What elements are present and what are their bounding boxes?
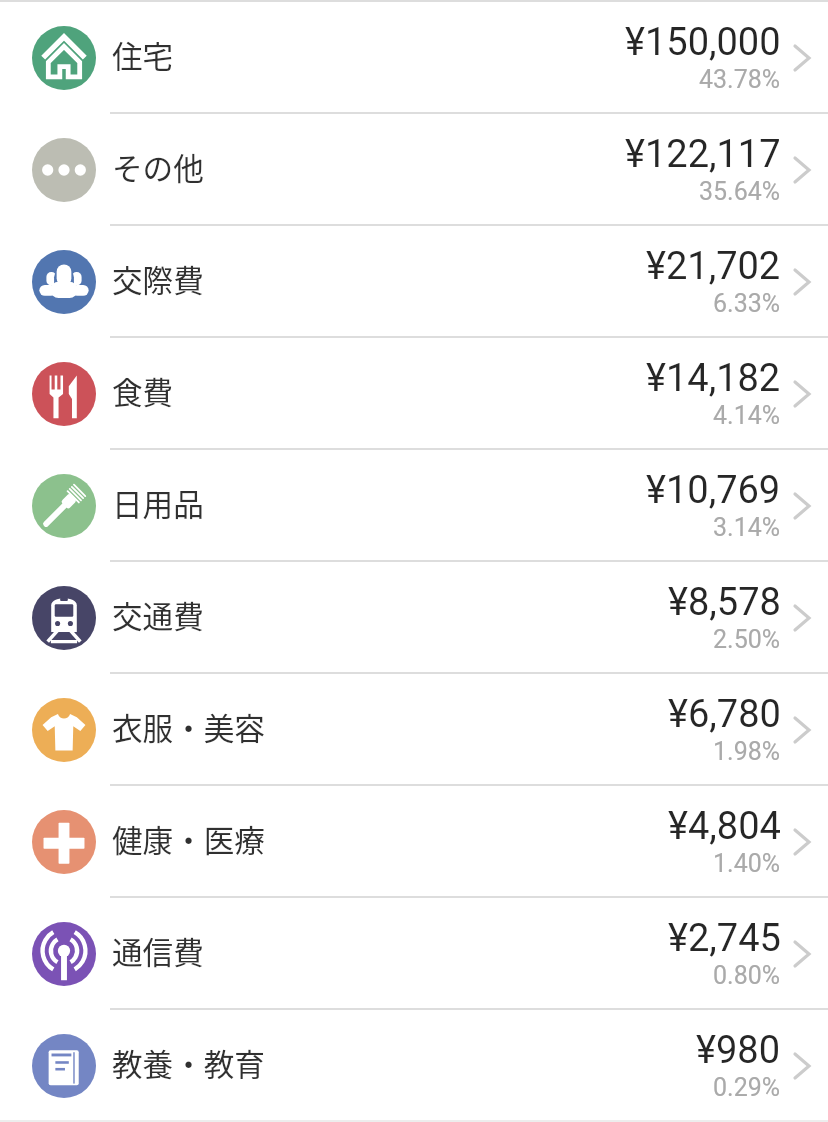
- other: Open details: [794, 941, 810, 967]
- staticText: 教養・教育: [112, 1041, 265, 1085]
- other: Open details: [794, 493, 810, 519]
- staticText: 35.64%: [699, 177, 781, 206]
- button[interactable]: 通信費: [0, 898, 828, 1010]
- staticText: ¥8,578: [668, 580, 781, 625]
- staticText: 3.14%: [713, 513, 781, 542]
- other: Open details: [794, 157, 810, 183]
- staticText: 通信費: [112, 929, 204, 973]
- staticText: ¥10,769: [646, 468, 781, 513]
- staticText: 4.14%: [713, 401, 781, 430]
- staticText: 住宅: [112, 33, 174, 77]
- other: Open details: [794, 605, 810, 631]
- other: Open details: [794, 381, 810, 407]
- staticText: 日用品: [112, 481, 204, 525]
- staticText: 0.29%: [713, 1073, 781, 1102]
- button[interactable]: 交通費: [0, 562, 828, 674]
- staticText: 交通費: [112, 593, 204, 637]
- button[interactable]: 日用品: [0, 450, 828, 562]
- button[interactable]: 食費: [0, 338, 828, 450]
- staticText: ¥14,182: [646, 356, 781, 401]
- staticText: ¥150,000: [625, 20, 781, 65]
- staticText: 0.80%: [713, 961, 781, 990]
- staticText: その他: [112, 145, 204, 189]
- staticText: 食費: [112, 369, 174, 413]
- staticText: ¥980: [696, 1028, 781, 1073]
- button[interactable]: 健康・医療: [0, 786, 828, 898]
- staticText: 交際費: [112, 257, 204, 301]
- staticText: 健康・医療: [112, 817, 265, 861]
- staticText: 6.33%: [713, 289, 781, 318]
- staticText: 衣服・美容: [112, 705, 265, 749]
- staticText: 43.78%: [699, 65, 781, 94]
- staticText: ¥4,804: [668, 804, 781, 849]
- button[interactable]: その他: [0, 114, 828, 226]
- button[interactable]: 住宅: [0, 2, 828, 114]
- other: Open details: [794, 269, 810, 295]
- button[interactable]: 衣服・美容: [0, 674, 828, 786]
- other: Open details: [794, 717, 810, 743]
- staticText: 2.50%: [713, 625, 781, 654]
- button[interactable]: 教養・教育: [0, 1010, 828, 1122]
- button[interactable]: 交際費: [0, 226, 828, 338]
- staticText: ¥122,117: [625, 132, 781, 177]
- staticText: 1.40%: [713, 849, 781, 878]
- staticText: 1.98%: [713, 737, 781, 766]
- staticText: ¥21,702: [646, 244, 781, 289]
- staticText: ¥2,745: [668, 916, 781, 961]
- other: Open details: [794, 45, 810, 71]
- other: Open details: [794, 1053, 810, 1079]
- other: Open details: [794, 829, 810, 855]
- staticText: ¥6,780: [668, 692, 781, 737]
